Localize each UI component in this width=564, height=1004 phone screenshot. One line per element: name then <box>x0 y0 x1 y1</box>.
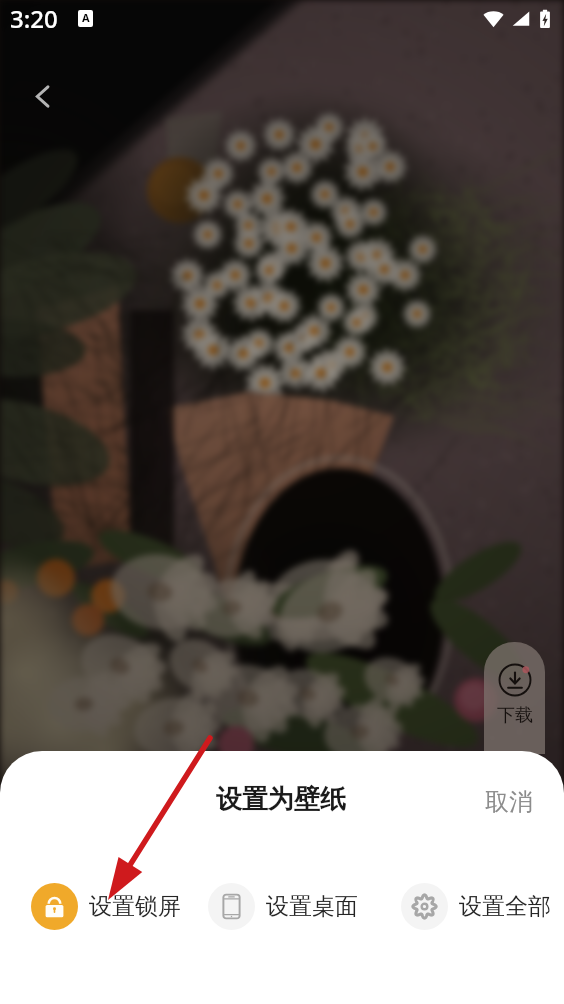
button[interactable]: 设置桌面 <box>200 875 366 938</box>
staticText: 下载 <box>497 704 533 727</box>
staticText: 设置为壁纸 <box>216 783 346 816</box>
staticText: A <box>82 10 90 25</box>
button[interactable]: 取消 <box>471 773 547 831</box>
staticText: 取消 <box>485 787 533 817</box>
button[interactable]: Back <box>18 72 66 120</box>
staticText: 3:20 <box>10 2 58 35</box>
button[interactable]: Download <box>484 642 545 754</box>
button[interactable]: 设置锁屏 <box>23 875 189 938</box>
button[interactable]: 设置全部 <box>393 875 559 938</box>
staticText: 设置桌面 <box>266 892 358 921</box>
staticText: 设置锁屏 <box>89 892 181 921</box>
staticText: 设置全部 <box>459 892 551 921</box>
